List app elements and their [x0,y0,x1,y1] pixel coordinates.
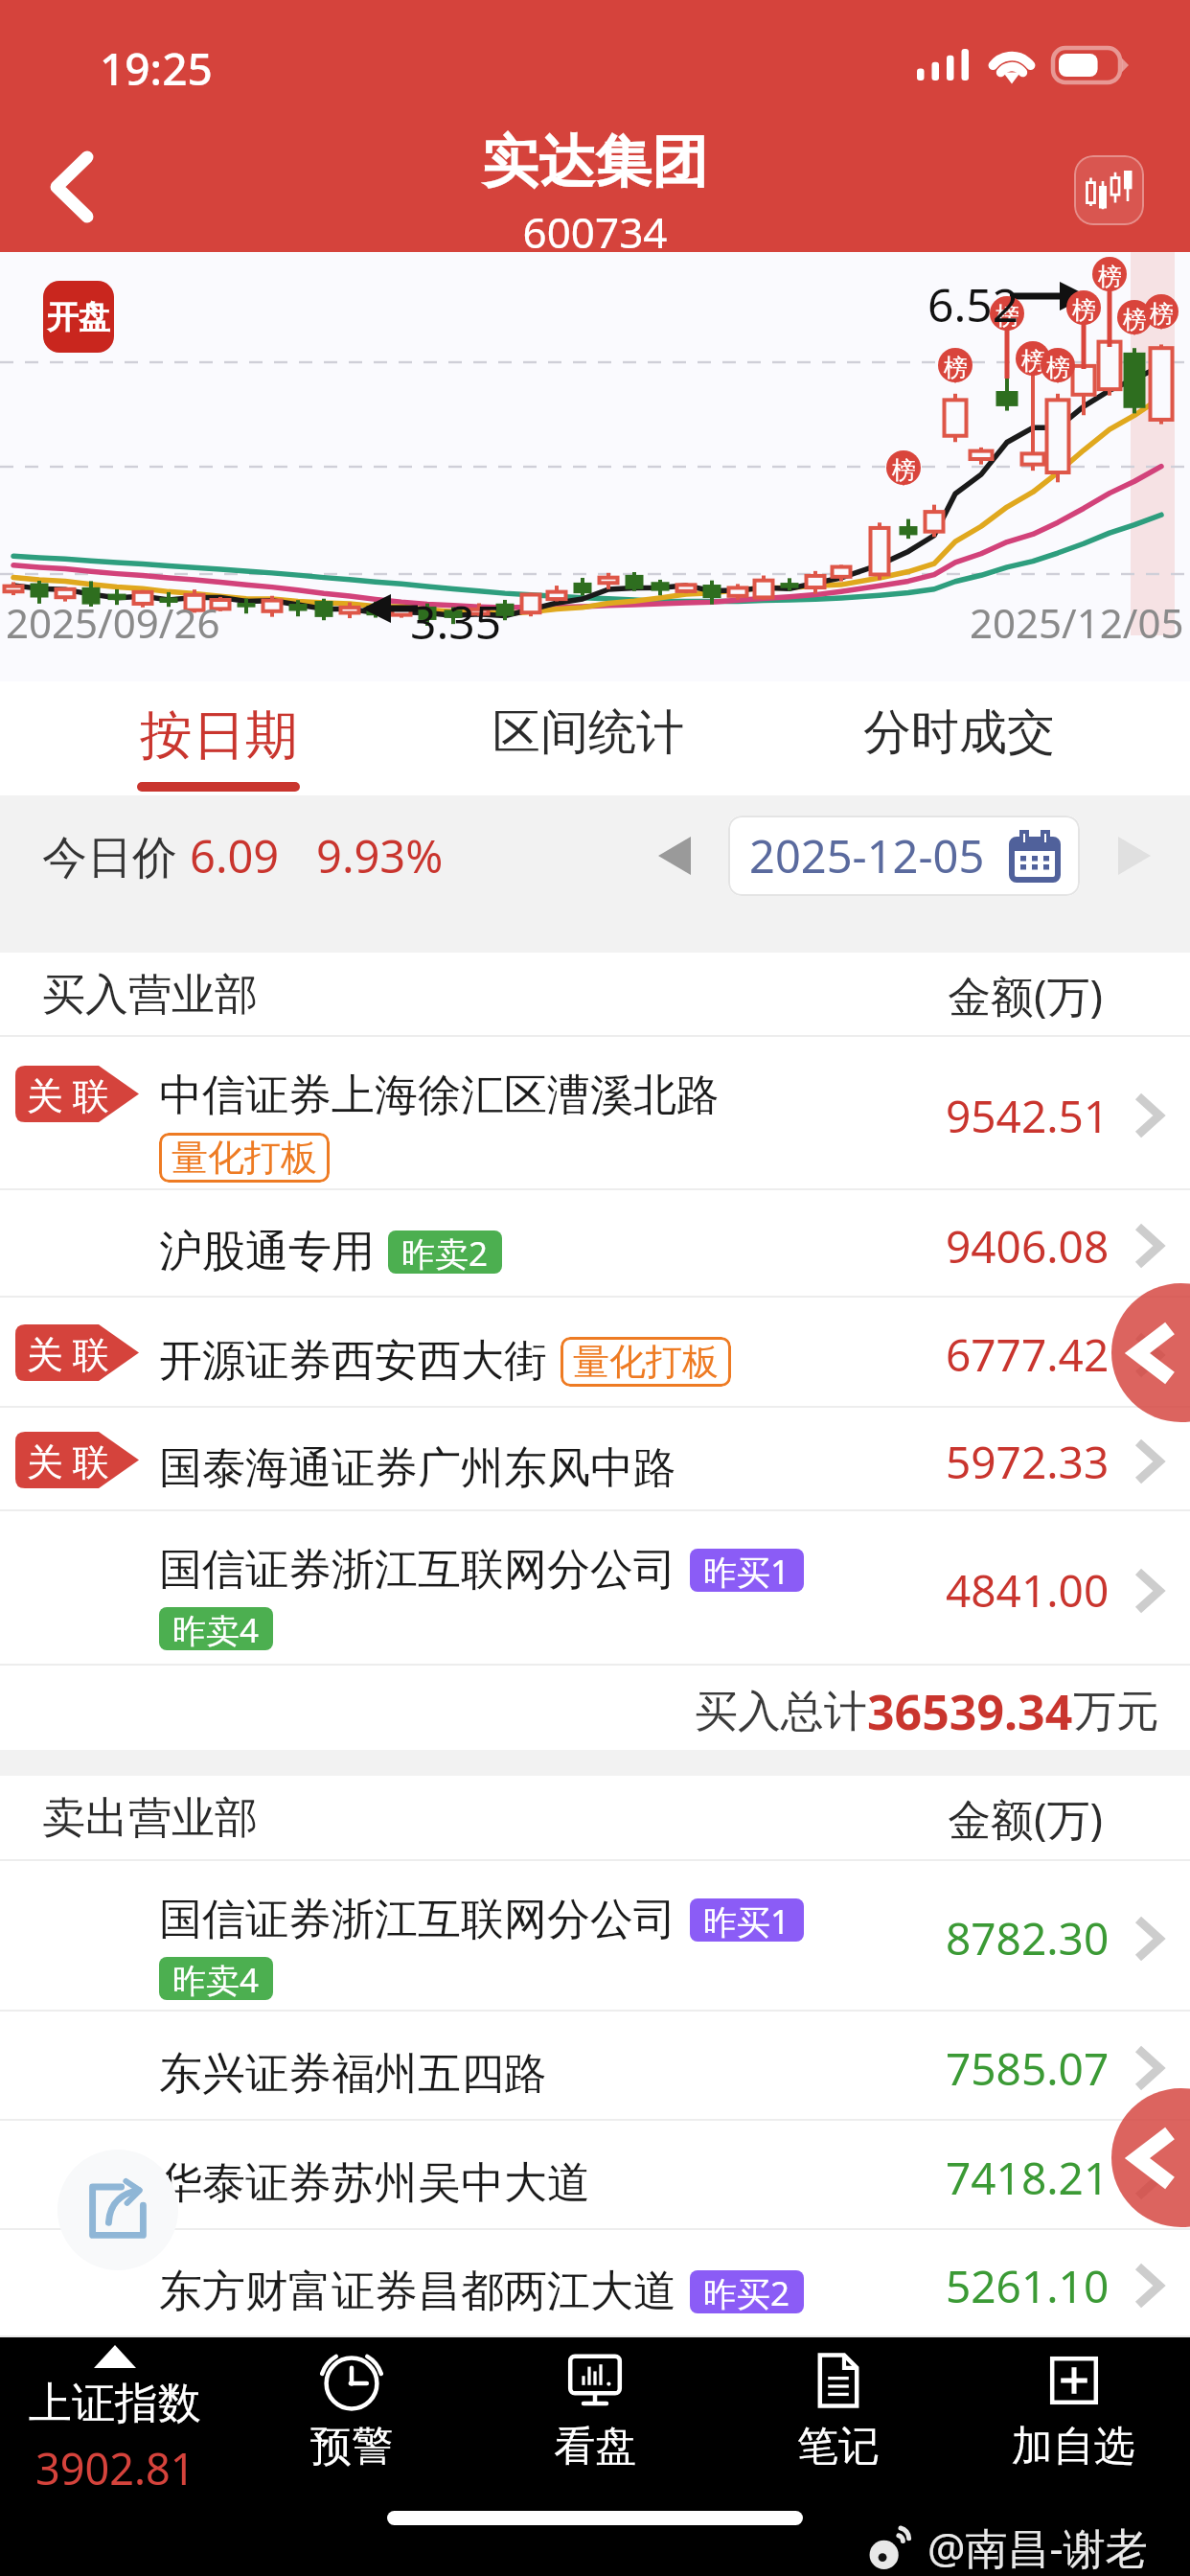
staticText: 8782.30 [946,1908,1110,1968]
button[interactable]: 华泰证券苏州吴中大道 [0,2121,1190,2230]
staticText: 区间统计 [492,702,684,763]
staticText: 关 联 [27,1328,109,1378]
button[interactable]: 加自选 [958,2337,1188,2491]
staticText: 按日期 [140,702,298,769]
staticText: 榜 [1046,353,1070,382]
staticText: 榜 [944,353,968,382]
staticText: 榜 [995,301,1019,331]
button[interactable]: 区间统计 [472,681,703,795]
staticText: 7418.21 [946,2148,1110,2208]
staticText: 关 联 [27,1436,109,1485]
staticText: 2025-12-05 [749,825,985,886]
staticText: 买入营业部 [42,968,258,1023]
staticText: 2025/12/05 [970,595,1184,650]
staticText: 量化打板 [573,1339,719,1385]
staticText: 昨买2 [703,2270,790,2313]
staticText: 东兴证券福州五四路 [159,2047,547,2102]
staticText: 昨卖4 [172,1957,260,2000]
staticText: 看盘 [554,2421,636,2472]
staticText: 分时成交 [863,702,1055,763]
staticText: 万元 [1073,1685,1159,1739]
staticText: 上证指数 [29,2377,201,2431]
staticText: 榜 [1072,295,1096,325]
staticText: 今日价 [42,825,190,886]
staticText: 卖出营业部 [42,1791,258,1846]
staticText: 榜 [1150,299,1174,329]
button[interactable]: Back [19,134,125,240]
staticText: 中信证券上海徐汇区漕溪北路 [159,1069,720,1123]
staticText: 9542.51 [946,1086,1110,1146]
button[interactable]: 上证指数 [10,2337,220,2491]
button[interactable]: 看盘 [480,2337,710,2491]
staticText: 榜 [1098,262,1122,291]
staticText: 3902.81 [35,2439,195,2491]
staticText: 关 联 [27,1069,109,1119]
button[interactable]: 关 联 [0,1408,1190,1511]
staticText: 5972.33 [946,1432,1110,1492]
staticText: 4841.00 [946,1560,1110,1621]
button[interactable]: Previous day [648,795,701,916]
staticText: 量化打板 [172,1135,317,1181]
staticText: 6.09 [190,825,280,886]
staticText: 昨买1 [703,1898,790,1942]
staticText: 实达集团 [482,126,708,197]
button[interactable]: Back [1111,1283,1190,1422]
button[interactable]: 关 联 [0,1298,1190,1408]
staticText: 榜 [1123,305,1147,334]
staticText: 6.52 [927,273,1019,335]
button[interactable]: 分时成交 [843,681,1074,795]
button[interactable]: 2025-12-05 [728,816,1080,896]
button[interactable]: Next day [1108,795,1161,916]
staticText: 国信证券浙江互联网分公司 [159,1543,676,1598]
staticText: 9.93% [316,825,444,886]
staticText: 19:25 [100,38,213,99]
staticText: 开源证券西安西大街 [159,1334,547,1389]
button[interactable]: 东方财富证券昌都两江大道 [0,2230,1190,2337]
staticText: 36539.34 [867,1679,1073,1744]
staticText: 昨卖4 [172,1607,260,1650]
button[interactable]: 国信证券浙江互联网分公司 [0,1861,1190,2012]
staticText: 笔记 [797,2421,880,2472]
button[interactable]: 按日期 [137,681,300,795]
staticText: 9406.08 [946,1216,1110,1276]
staticText: 国信证券浙江互联网分公司 [159,1893,676,1947]
staticText: 5261.10 [946,2256,1110,2316]
staticText: 预警 [310,2421,393,2472]
staticText: @南昌-谢老 [927,2518,1148,2576]
button[interactable]: 预警 [237,2337,467,2491]
staticText: 600734 [522,203,668,261]
staticText: 金额(万) [948,966,1104,1024]
staticText: 榜 [892,455,916,485]
button[interactable]: Share [57,2150,178,2270]
staticText: 加自选 [1012,2421,1135,2472]
staticText: 沪股通专用 [159,1225,375,1279]
staticText: 榜 [1021,346,1045,376]
staticText: 华泰证券苏州吴中大道 [159,2156,590,2211]
button[interactable]: Back [1111,2088,1190,2227]
button[interactable]: 国信证券浙江互联网分公司 [0,1511,1190,1666]
button[interactable]: 东兴证券福州五四路 [0,2012,1190,2121]
staticText: 金额(万) [948,1789,1104,1848]
staticText: 7585.07 [946,2038,1110,2099]
staticText: 昨卖2 [401,1230,489,1274]
button[interactable]: Chart [1074,155,1144,225]
button[interactable]: 关 联 [0,1037,1190,1190]
staticText: 开盘 [47,297,110,337]
staticText: 国泰海通证券广州东风中路 [159,1441,676,1496]
staticText: 6777.42 [946,1324,1110,1385]
staticText: 买入总计 [695,1685,867,1739]
button[interactable]: 笔记 [723,2337,953,2491]
staticText: 昨买1 [703,1549,790,1592]
staticText: 3.35 [410,590,502,653]
staticText: 东方财富证券昌都两江大道 [159,2265,676,2319]
staticText: 2025/09/26 [6,595,220,650]
button[interactable]: 沪股通专用 [0,1190,1190,1298]
